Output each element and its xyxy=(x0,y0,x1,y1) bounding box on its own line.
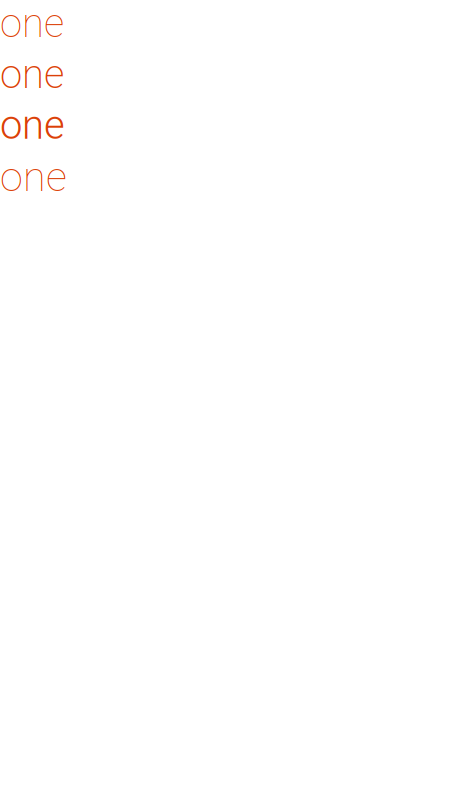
staticText: one xyxy=(0,0,64,47)
staticText: one xyxy=(0,102,65,149)
staticText: one xyxy=(0,153,67,201)
staticText: one xyxy=(0,51,64,98)
